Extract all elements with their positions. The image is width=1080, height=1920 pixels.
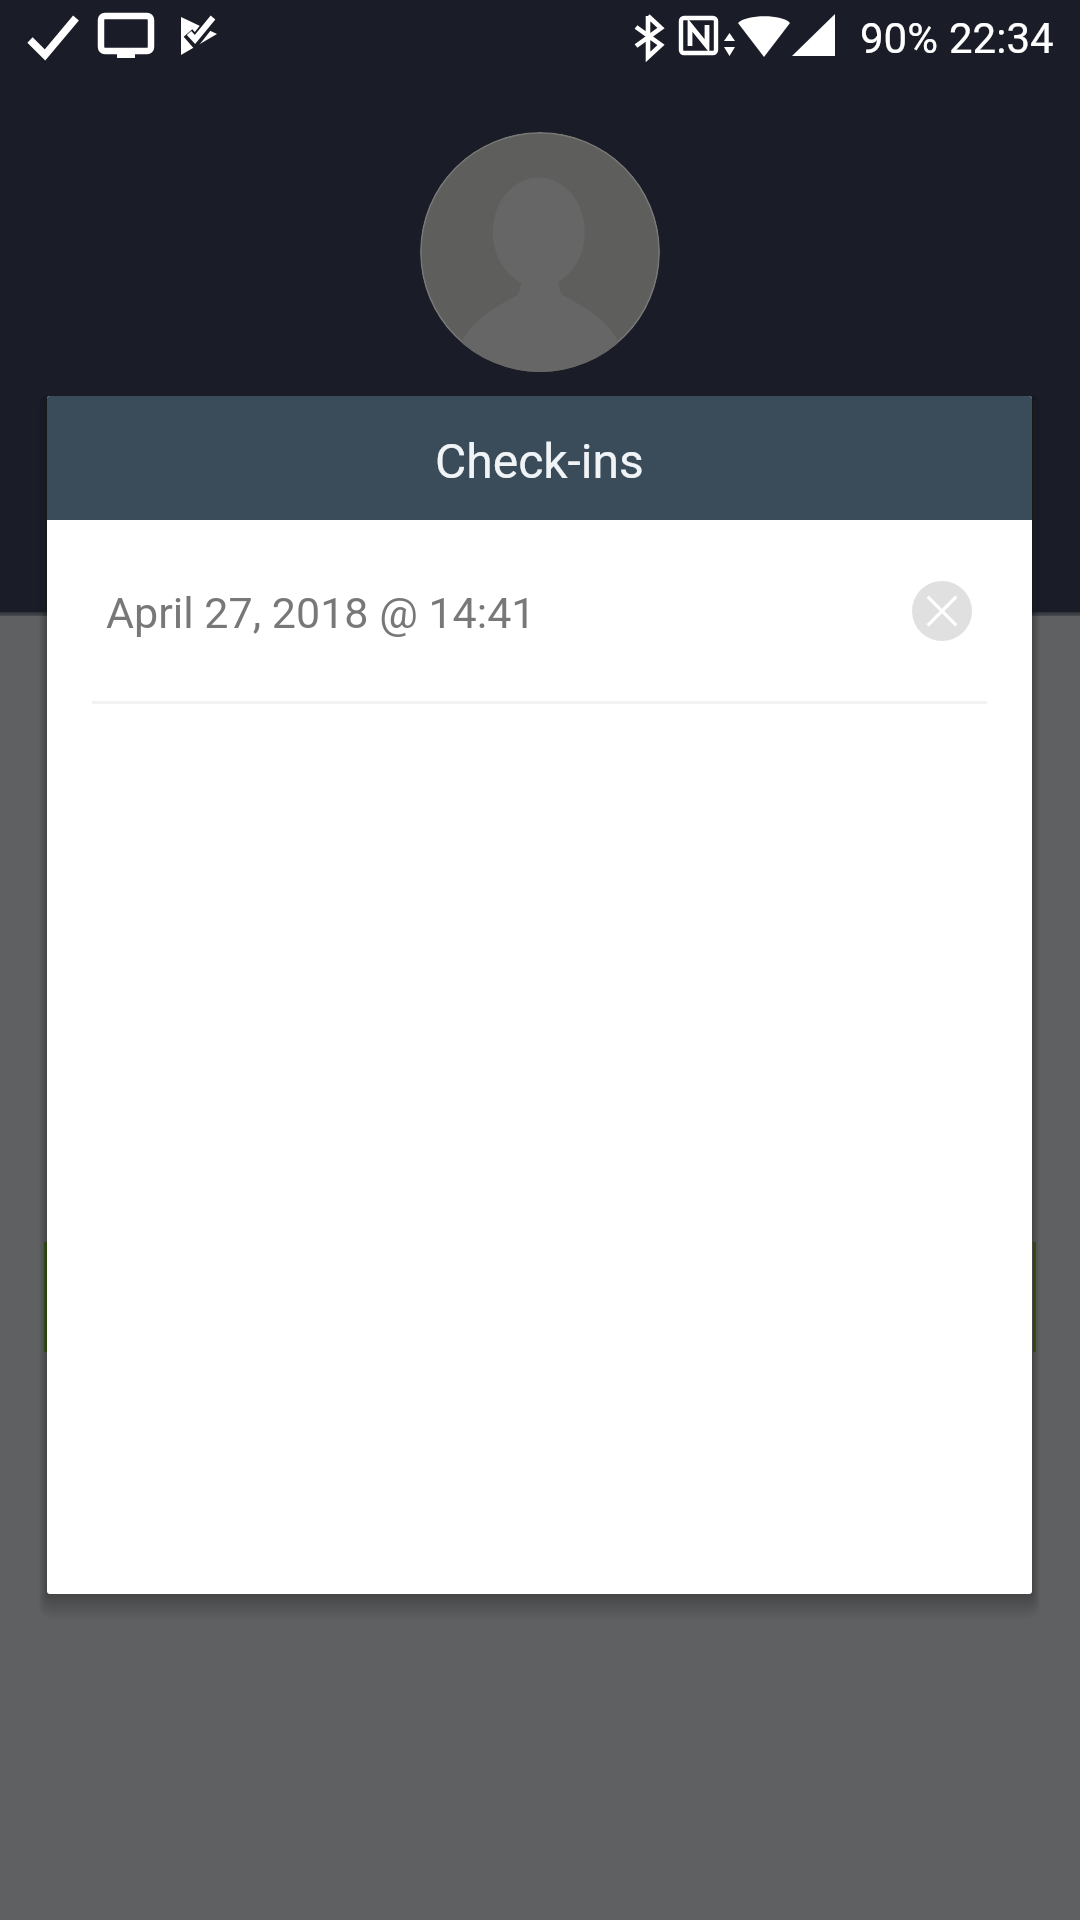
staticText: Check-ins: [435, 433, 644, 489]
staticText: 90%: [860, 14, 938, 63]
staticText: 22:34: [949, 14, 1054, 63]
button[interactable]: Profile photo: [420, 132, 660, 372]
button[interactable]: April 27, 2018 @ 14:41: [47, 520, 1032, 701]
button[interactable]: Check-ins: [47, 396, 1032, 520]
staticText: April 27, 2018 @ 14:41: [106, 588, 912, 638]
button[interactable]: Remove check-in: [912, 581, 972, 641]
